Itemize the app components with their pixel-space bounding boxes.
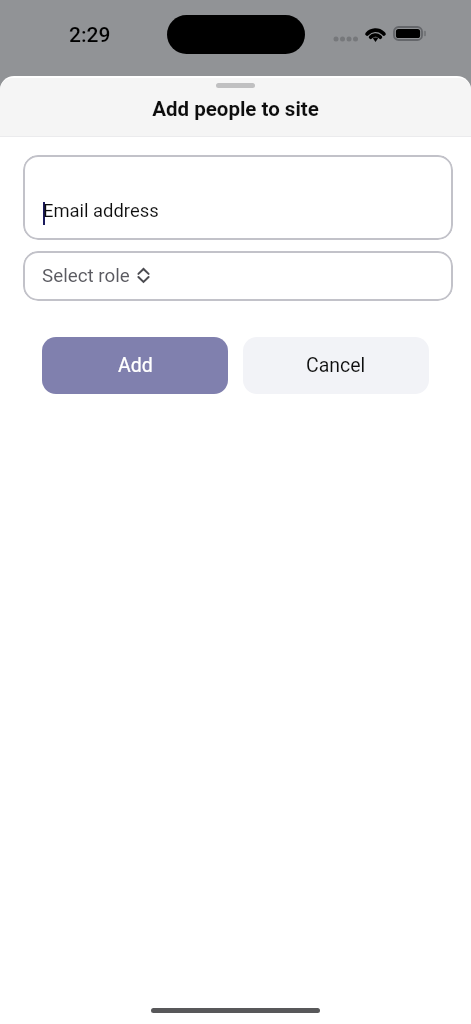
- staticText: 2:29: [69, 23, 111, 48]
- staticText: Cancel: [306, 354, 366, 377]
- button[interactable]: Drag handle: [216, 83, 255, 88]
- button[interactable]: Select role: [23, 251, 453, 301]
- staticText: Add people to site: [152, 97, 319, 121]
- button[interactable]: Add: [42, 337, 228, 394]
- button[interactable]: Email address: [23, 155, 453, 240]
- button[interactable]: Cancel: [243, 337, 429, 394]
- staticText: Select role: [42, 265, 130, 287]
- staticText: Add: [118, 354, 153, 377]
- staticText: Email address: [43, 200, 159, 222]
